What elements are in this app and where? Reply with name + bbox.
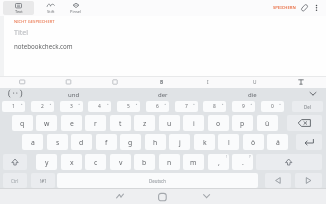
button[interactable]: n: [159, 154, 180, 170]
button[interactable]: 5: [117, 101, 140, 112]
button[interactable]: p: [232, 115, 253, 131]
button[interactable]: 3: [60, 101, 83, 112]
button[interactable]: w: [36, 115, 57, 131]
staticText: ü: [265, 119, 270, 128]
button[interactable]: ä: [267, 134, 288, 150]
button[interactable]: [287, 115, 322, 131]
button[interactable]: ö: [243, 134, 264, 150]
button[interactable]: a: [22, 134, 43, 150]
button[interactable]: b: [134, 154, 155, 170]
button[interactable]: [14, 76, 30, 87]
button[interactable]: 9: [232, 101, 255, 112]
button[interactable]: [6, 87, 26, 100]
button[interactable]: [312, 0, 324, 16]
button[interactable]: e: [61, 115, 82, 131]
staticText: ,: [218, 158, 220, 167]
button[interactable]: h: [145, 134, 166, 150]
button[interactable]: [66, 0, 96, 16]
button[interactable]: 1: [2, 101, 25, 112]
button[interactable]: [196, 188, 218, 204]
staticText: Text: [15, 9, 23, 14]
button[interactable]: 2: [31, 101, 54, 112]
button[interactable]: q: [12, 115, 33, 131]
staticText: k: [203, 138, 207, 147]
button[interactable]: 6: [146, 101, 169, 112]
button[interactable]: [297, 0, 312, 16]
button[interactable]: 4: [88, 101, 111, 112]
button[interactable]: s: [47, 134, 68, 150]
staticText: c: [94, 158, 98, 167]
staticText: B: [160, 79, 164, 86]
staticText: .: [242, 158, 244, 167]
staticText: 9: [242, 103, 245, 110]
staticText: z: [143, 119, 147, 128]
button[interactable]: [246, 76, 262, 87]
button[interactable]: r: [85, 115, 106, 131]
button[interactable]: [108, 188, 132, 204]
staticText: die: [248, 91, 257, 99]
button[interactable]: [152, 188, 174, 204]
staticText: y: [45, 158, 49, 167]
button[interactable]: z: [134, 115, 155, 131]
staticText: !#1: [40, 178, 47, 184]
button[interactable]: [293, 76, 309, 87]
button[interactable]: [60, 76, 76, 87]
button[interactable]: 0: [261, 101, 284, 112]
button[interactable]: [37, 0, 66, 16]
staticText: 2: [41, 103, 44, 110]
button[interactable]: [262, 0, 306, 16]
button[interactable]: v: [110, 154, 131, 170]
button[interactable]: x: [61, 154, 82, 170]
button[interactable]: [265, 173, 291, 188]
button[interactable]: c: [85, 154, 106, 170]
button[interactable]: o: [208, 115, 229, 131]
button[interactable]: [295, 173, 322, 188]
button[interactable]: [3, 1, 34, 15]
staticText: o: [216, 119, 221, 128]
button[interactable]: [107, 76, 123, 87]
button[interactable]: l: [218, 134, 239, 150]
staticText: f: [105, 138, 108, 147]
button[interactable]: d: [71, 134, 92, 150]
staticText: h: [153, 138, 158, 147]
staticText: d: [79, 138, 84, 147]
button[interactable]: g: [120, 134, 141, 150]
button[interactable]: [296, 134, 322, 150]
staticText: NICHT GESPEICHERT: [14, 19, 55, 24]
button[interactable]: f: [96, 134, 117, 150]
button[interactable]: Del: [292, 101, 323, 112]
button[interactable]: [153, 76, 169, 87]
button[interactable]: 8: [203, 101, 226, 112]
button[interactable]: [200, 76, 216, 87]
staticText: a: [31, 138, 35, 147]
button[interactable]: ü: [257, 115, 278, 131]
button[interactable]: u: [159, 115, 180, 131]
staticText: r: [94, 119, 97, 128]
button[interactable]: [30, 87, 118, 100]
staticText: m: [190, 158, 197, 167]
button[interactable]: 7: [175, 101, 198, 112]
button[interactable]: [304, 87, 322, 100]
staticText: b: [142, 158, 147, 167]
staticText: n: [167, 158, 172, 167]
button[interactable]: k: [194, 134, 215, 150]
button[interactable]: i: [183, 115, 204, 131]
staticText: l: [228, 138, 230, 147]
button[interactable]: ,: [208, 154, 229, 170]
button[interactable]: m: [183, 154, 204, 170]
button[interactable]: t: [110, 115, 131, 131]
staticText: 7: [185, 103, 188, 110]
button[interactable]: [119, 87, 207, 100]
button[interactable]: [208, 87, 296, 100]
staticText: I: [207, 79, 209, 86]
button[interactable]: y: [36, 154, 57, 170]
button[interactable]: .: [232, 154, 253, 170]
button[interactable]: Deutsch: [57, 173, 258, 188]
staticText: Del: [304, 104, 311, 110]
button[interactable]: Ctrl: [3, 173, 27, 188]
button[interactable]: j: [169, 134, 190, 150]
staticText: 8: [213, 103, 216, 110]
button[interactable]: !#1: [31, 173, 55, 188]
button[interactable]: [256, 154, 322, 170]
button[interactable]: [3, 154, 27, 170]
